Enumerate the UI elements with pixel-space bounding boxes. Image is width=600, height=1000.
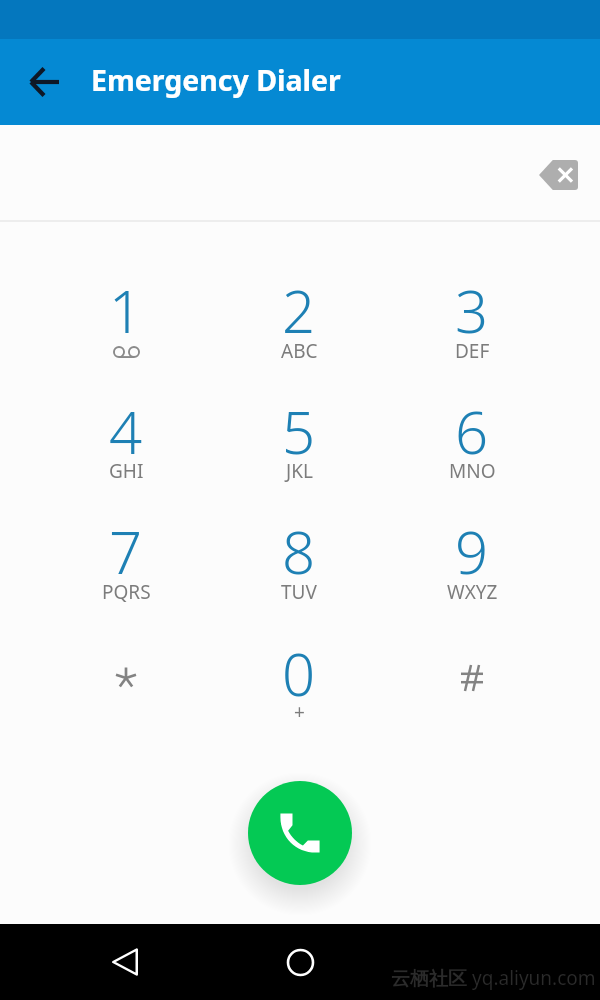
button[interactable]: *: [68, 616, 184, 734]
button[interactable]: 7: [68, 494, 184, 612]
staticText: 6: [455, 392, 489, 462]
staticText: 7: [109, 512, 143, 582]
staticText: 1: [109, 271, 143, 341]
staticText: TUV: [281, 579, 317, 605]
staticText: +: [294, 699, 305, 725]
button[interactable]: Back: [20, 58, 68, 106]
staticText: yq.aliyun.com: [472, 965, 596, 991]
button[interactable]: 2: [241, 253, 357, 371]
button[interactable]: Home: [276, 938, 324, 986]
button[interactable]: 9: [414, 494, 530, 612]
staticText: MNO: [449, 458, 496, 484]
button[interactable]: Call: [248, 781, 352, 885]
staticText: GHI: [109, 458, 144, 484]
button[interactable]: #: [414, 616, 530, 734]
staticText: ABC: [281, 338, 318, 364]
staticText: 5: [282, 392, 316, 462]
staticText: 2: [282, 271, 316, 341]
button[interactable]: Back: [101, 938, 149, 986]
staticText: 9: [455, 512, 489, 582]
button[interactable]: 0: [241, 616, 357, 734]
staticText: Emergency Dialer: [91, 61, 341, 100]
staticText: 云栖社区: [391, 965, 472, 991]
staticText: 4: [109, 392, 143, 462]
staticText: 0: [282, 634, 316, 704]
button[interactable]: 3: [414, 253, 530, 371]
button[interactable]: 6: [414, 374, 530, 492]
staticText: 8: [282, 512, 316, 582]
staticText: JKL: [286, 458, 313, 484]
staticText: 3: [455, 271, 489, 341]
button[interactable]: 4: [68, 374, 184, 492]
staticText: PQRS: [102, 579, 151, 605]
staticText: WXYZ: [447, 579, 498, 605]
button[interactable]: 8: [241, 494, 357, 612]
button[interactable]: 5: [241, 374, 357, 492]
staticText: DEF: [455, 338, 490, 364]
button[interactable]: Backspace: [528, 145, 588, 205]
button[interactable]: 1: [68, 253, 184, 371]
